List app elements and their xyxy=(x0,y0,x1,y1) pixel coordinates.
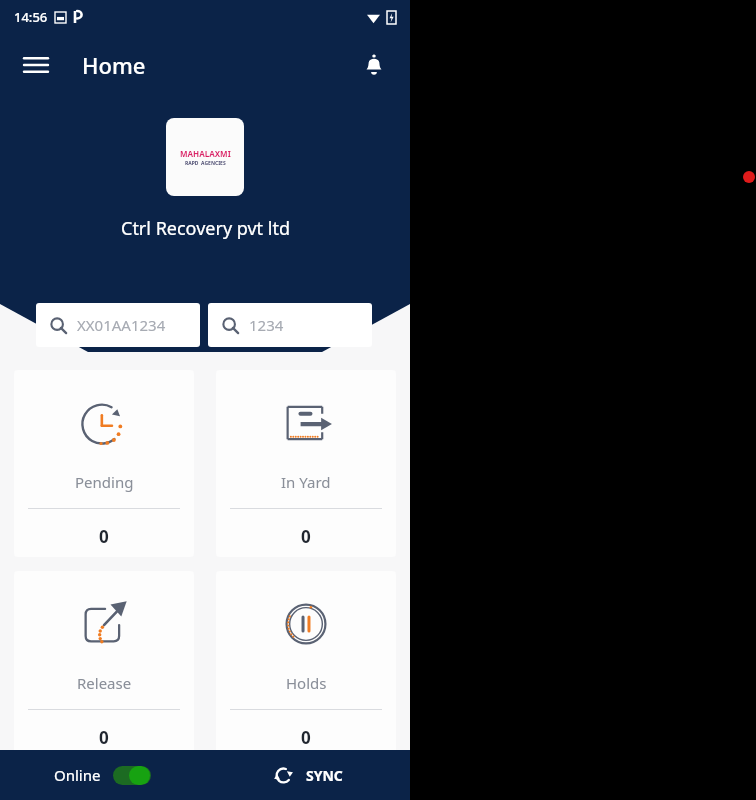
staticText: Release xyxy=(77,673,132,693)
staticText: 0 xyxy=(301,726,311,749)
staticText: Online xyxy=(54,765,101,785)
button[interactable]: Notifications xyxy=(350,41,398,89)
button[interactable]: 1234 xyxy=(208,303,372,347)
staticText: 0 xyxy=(99,726,109,749)
button[interactable]: Online xyxy=(0,750,205,800)
button[interactable]: Open navigation menu xyxy=(12,41,60,89)
button[interactable]: SYNC xyxy=(205,750,410,800)
staticText: RAPD AGENCIES xyxy=(185,160,226,167)
staticText: XX01AA1234 xyxy=(77,315,166,335)
button[interactable]: XX01AA1234 xyxy=(36,303,200,347)
staticText: SYNC xyxy=(306,766,343,785)
button[interactable]: Pending xyxy=(14,370,194,557)
staticText: 1234 xyxy=(249,315,284,335)
staticText: In Yard xyxy=(281,472,331,492)
staticText: 0 xyxy=(301,525,311,548)
button[interactable]: Release xyxy=(14,571,194,758)
staticText: 14:56 xyxy=(14,8,48,26)
staticText: Ctrl Recovery pvt ltd xyxy=(121,216,290,241)
staticText: MAHALAXMI xyxy=(180,148,231,159)
staticText: Pending xyxy=(75,472,134,492)
staticText: 0 xyxy=(99,525,109,548)
staticText: Holds xyxy=(286,673,327,693)
staticText: Home xyxy=(82,50,146,80)
button[interactable]: Holds xyxy=(216,571,396,758)
button[interactable]: In Yard xyxy=(216,370,396,557)
